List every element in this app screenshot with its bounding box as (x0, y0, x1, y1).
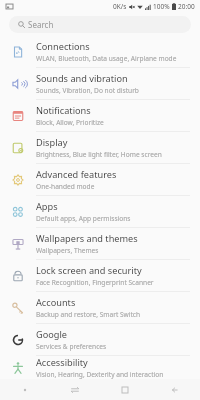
staticText: 100% (153, 2, 170, 11)
staticText: Block, Allow, Prioritize (36, 118, 104, 127)
staticText: 20:00 (178, 2, 195, 11)
staticText: Advanced features (36, 168, 117, 181)
button[interactable]: Recents (50, 379, 100, 400)
staticText: Accessibility (36, 356, 88, 369)
button[interactable]: Notifications (0, 100, 200, 131)
staticText: WLAN, Bluetooth, Data usage, Airplane mo… (36, 54, 177, 63)
staticText: Default apps, App permissions (36, 214, 131, 223)
button[interactable]: Apps (0, 196, 200, 227)
staticText: Apps (36, 200, 58, 213)
button[interactable]: Connections (0, 36, 200, 67)
staticText: Google (36, 328, 68, 341)
button[interactable]: Display (0, 132, 200, 163)
button[interactable]: Accessibility (0, 356, 200, 379)
staticText: Display (36, 136, 68, 149)
button[interactable]: Wallpapers and themes (0, 228, 200, 259)
staticText: Connections (36, 40, 90, 53)
staticText: Wallpapers, Themes (36, 246, 99, 255)
staticText: Notifications (36, 104, 91, 117)
button[interactable]: Accounts (0, 292, 200, 323)
button[interactable]: Search (9, 16, 191, 33)
staticText: Sounds and vibration (36, 72, 128, 85)
button[interactable]: Sounds and vibration (0, 68, 200, 99)
staticText: Lock screen and security (36, 264, 142, 277)
button[interactable]: Lock screen and security (0, 260, 200, 291)
staticText: Vision, Hearing, Dexterity and interacti… (36, 370, 164, 379)
staticText: Face Recognition, Fingerprint Scanner (36, 278, 154, 287)
button[interactable]: Menu (0, 379, 50, 400)
staticText: 0K/s (113, 2, 127, 11)
button[interactable]: Back (150, 379, 200, 400)
staticText: Sounds, Vibration, Do not disturb (36, 86, 139, 95)
staticText: Services & preferences (36, 342, 107, 351)
staticText: Search (28, 19, 54, 30)
button[interactable]: Google (0, 324, 200, 355)
staticText: Backup and restore, Smart Switch (36, 310, 141, 319)
button[interactable]: Advanced features (0, 164, 200, 195)
button[interactable]: Home (100, 379, 150, 400)
staticText: One-handed mode (36, 182, 95, 191)
staticText: Accounts (36, 296, 76, 309)
staticText: Wallpapers and themes (36, 232, 138, 245)
staticText: Brightness, Blue light filter, Home scre… (36, 150, 162, 159)
